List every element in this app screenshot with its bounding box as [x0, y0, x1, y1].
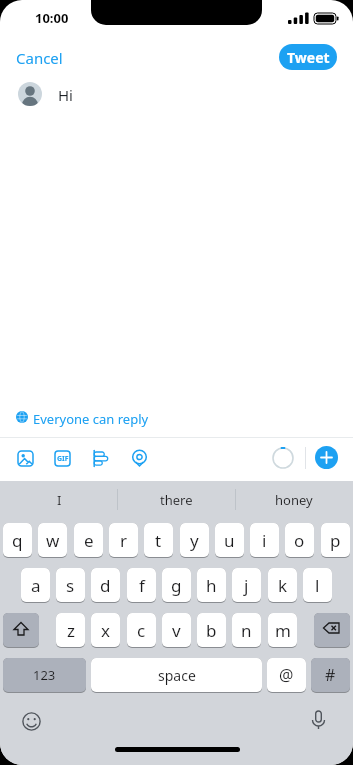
button[interactable]: I: [0, 481, 118, 518]
staticText: e: [84, 529, 94, 552]
staticText: s: [66, 574, 75, 597]
staticText: @: [279, 664, 294, 686]
staticText: #: [325, 664, 336, 686]
staticText: d: [100, 574, 111, 597]
button[interactable]: n: [232, 613, 261, 648]
staticText: c: [137, 619, 146, 642]
staticText: f: [139, 574, 145, 597]
button[interactable]: u: [215, 523, 244, 558]
button[interactable]: w: [38, 523, 67, 558]
staticText: v: [172, 619, 181, 642]
button[interactable]: Everyone can reply: [0, 404, 353, 437]
button[interactable]: p: [321, 523, 350, 558]
button[interactable]: o: [285, 523, 314, 558]
staticText: m: [275, 619, 291, 642]
button[interactable]: t: [144, 523, 173, 558]
button[interactable]: [314, 613, 350, 648]
staticText: j: [244, 574, 249, 597]
staticText: w: [46, 529, 60, 552]
staticText: i: [262, 529, 267, 552]
button[interactable]: d: [91, 568, 120, 603]
staticText: r: [120, 529, 128, 552]
button[interactable]: space: [91, 658, 262, 693]
staticText: u: [224, 529, 235, 552]
staticText: GIF: [57, 454, 69, 464]
staticText: space: [158, 666, 196, 685]
staticText: 10:00: [35, 9, 69, 27]
button[interactable]: s: [56, 568, 85, 603]
staticText: Hi: [58, 85, 73, 105]
staticText: a: [31, 574, 41, 597]
staticText: t: [155, 529, 162, 552]
button[interactable]: [309, 710, 328, 729]
button[interactable]: y: [180, 523, 209, 558]
button[interactable]: x: [91, 613, 120, 648]
button[interactable]: g: [162, 568, 191, 603]
staticText: Everyone can reply: [33, 410, 149, 428]
button[interactable]: a: [21, 568, 50, 603]
staticText: Tweet: [287, 48, 330, 67]
staticText: I: [57, 491, 62, 509]
staticText: y: [190, 529, 199, 552]
button[interactable]: i: [250, 523, 279, 558]
staticText: n: [241, 619, 252, 642]
button[interactable]: [315, 446, 338, 469]
button[interactable]: v: [162, 613, 191, 648]
button[interactable]: @: [267, 658, 306, 693]
button[interactable]: m: [268, 613, 297, 648]
button[interactable]: GIF: [54, 450, 71, 467]
staticText: k: [278, 574, 288, 597]
staticText: z: [67, 619, 75, 642]
button[interactable]: honey: [235, 481, 353, 518]
button[interactable]: j: [232, 568, 261, 603]
button[interactable]: h: [197, 568, 226, 603]
staticText: x: [101, 619, 110, 642]
staticText: honey: [275, 491, 313, 509]
button[interactable]: r: [109, 523, 138, 558]
button[interactable]: z: [56, 613, 85, 648]
button[interactable]: [91, 450, 109, 468]
button[interactable]: e: [74, 523, 103, 558]
button[interactable]: [22, 712, 41, 731]
staticText: q: [12, 529, 23, 552]
button[interactable]: c: [127, 613, 156, 648]
staticText: b: [206, 619, 217, 642]
button[interactable]: there: [118, 481, 235, 518]
button[interactable]: b: [197, 613, 226, 648]
staticText: there: [160, 491, 193, 509]
staticText: h: [206, 574, 217, 597]
button[interactable]: [17, 450, 34, 467]
button[interactable]: #: [311, 658, 350, 693]
button[interactable]: [3, 613, 39, 648]
button[interactable]: Tweet: [279, 44, 337, 70]
staticText: o: [294, 529, 305, 552]
button[interactable]: Cancel: [16, 48, 63, 68]
button[interactable]: q: [3, 523, 32, 558]
button[interactable]: [131, 449, 148, 466]
button[interactable]: f: [127, 568, 156, 603]
button[interactable]: l: [303, 568, 332, 603]
button[interactable]: k: [268, 568, 297, 603]
staticText: l: [315, 574, 320, 597]
button[interactable]: 123: [3, 658, 86, 693]
staticText: 123: [33, 666, 56, 684]
staticText: g: [171, 574, 182, 597]
staticText: p: [330, 529, 341, 552]
